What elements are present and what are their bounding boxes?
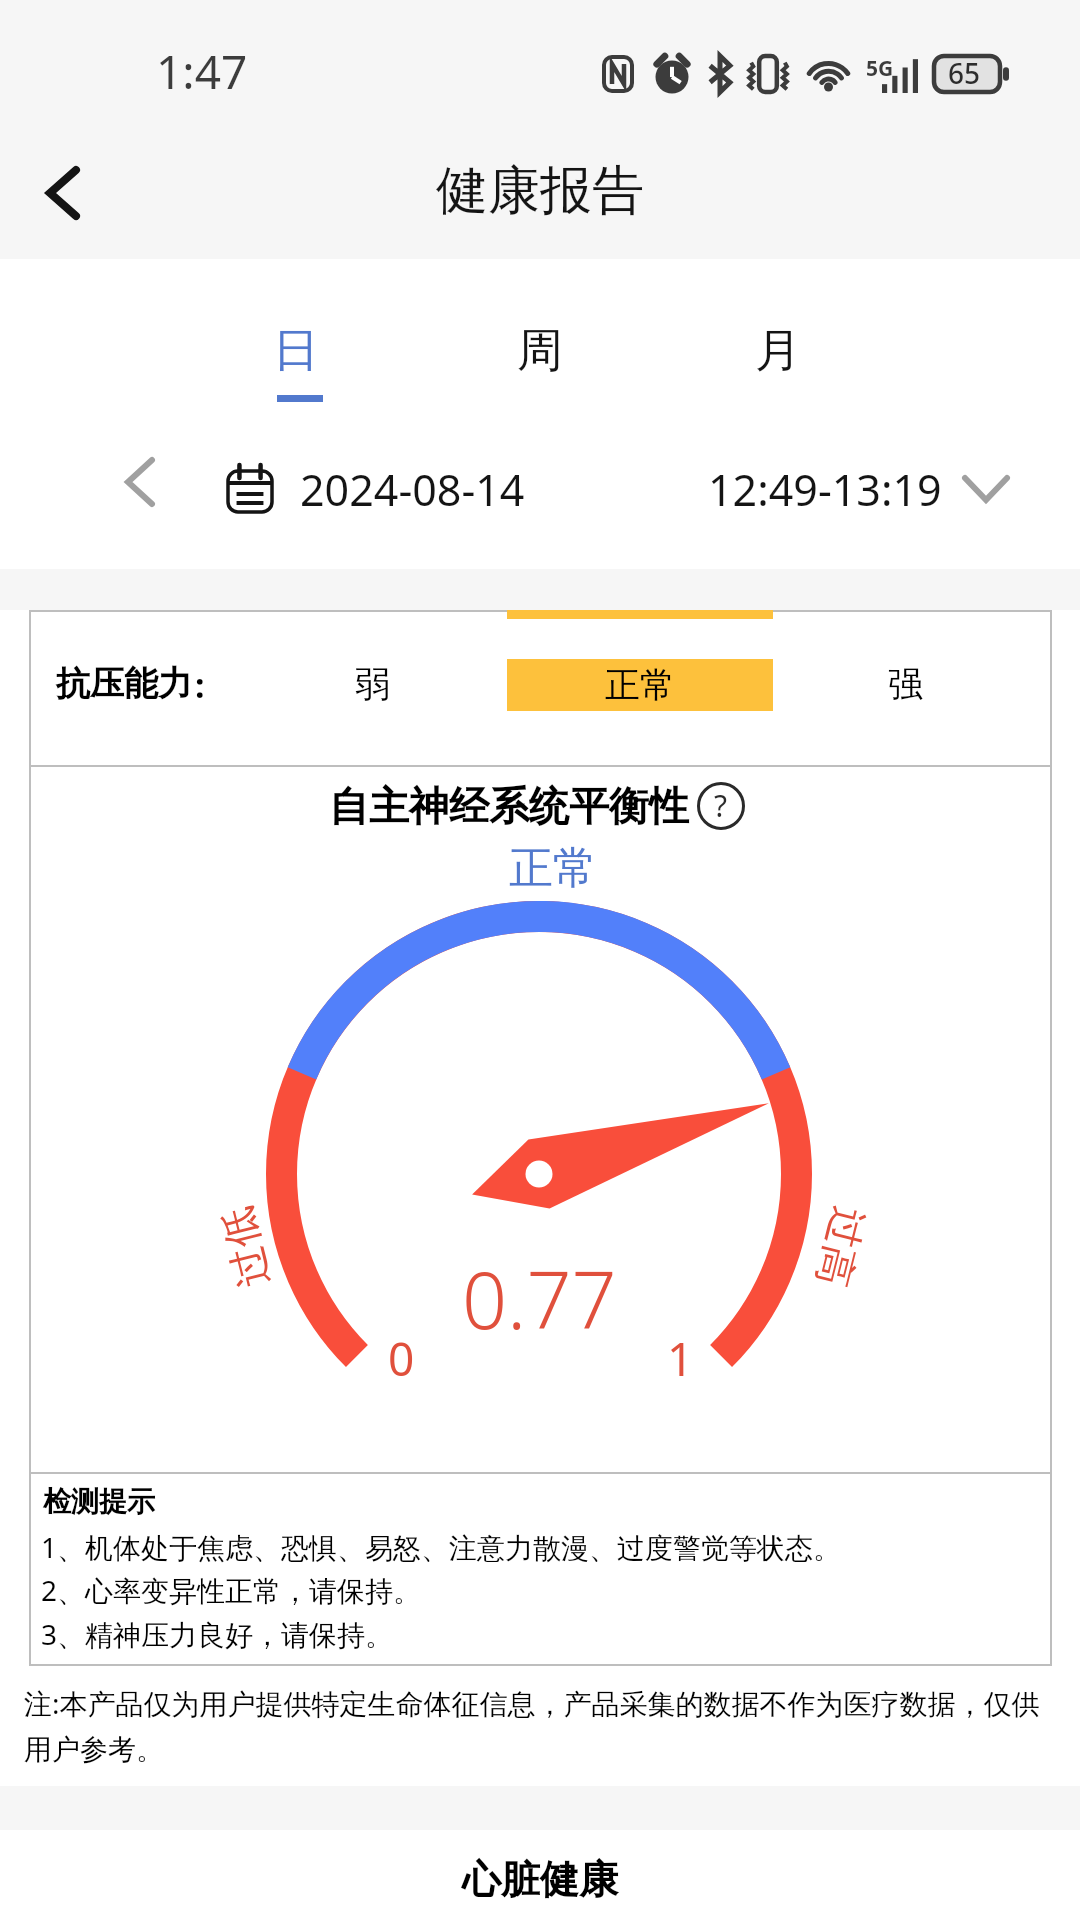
button[interactable]: Back: [19, 149, 107, 237]
staticText: 12:49-13:19: [708, 460, 942, 518]
staticText: 正常: [605, 663, 675, 707]
button[interactable]: 正常: [507, 659, 773, 711]
staticText: 0: [388, 1327, 415, 1387]
button[interactable]: 强: [860, 651, 950, 717]
button[interactable]: 弱: [327, 651, 417, 717]
staticText: 2、心率变异性正常，请保持。: [41, 1571, 422, 1609]
staticText: 强: [888, 662, 923, 706]
staticText: 月: [755, 322, 801, 380]
staticText: 65: [948, 54, 981, 92]
staticText: 2024-08-14: [300, 460, 525, 518]
staticText: 弱: [355, 662, 390, 706]
staticText: 检测提示: [43, 1484, 155, 1519]
staticText: 健康报告: [436, 158, 644, 224]
staticText: 周: [517, 322, 563, 380]
staticText: 1: [667, 1327, 694, 1387]
button[interactable]: Previous day: [104, 446, 176, 518]
staticText: 过低: [211, 1202, 279, 1292]
staticText: 注:本产品仅为用户提供特定生命体征信息，产品采集的数据不作为医疗数据，仅供 用户…: [24, 1684, 1040, 1767]
staticText: 0.77: [462, 1245, 617, 1353]
button[interactable]: 月: [722, 312, 834, 412]
button[interactable]: 周: [484, 312, 596, 412]
staticText: 1:47: [156, 40, 248, 103]
staticText: 3、精神压力良好，请保持。: [41, 1615, 394, 1653]
staticText: 1、机体处于焦虑、恐惧、易怒、注意力散漫、过度警觉等状态。: [41, 1528, 842, 1566]
staticText: ?: [714, 785, 728, 826]
staticText: 5G: [866, 54, 894, 83]
staticText: 心脏健康: [462, 1855, 618, 1904]
staticText: 过高: [807, 1202, 875, 1292]
button[interactable]: 12:49-13:19: [708, 460, 1010, 518]
button[interactable]: 心脏健康: [0, 1830, 1080, 1920]
staticText: :: [195, 662, 205, 708]
staticText: 抗压能力: [56, 662, 192, 705]
button[interactable]: Help: [697, 782, 745, 830]
staticText: 自主神经系统平衡性: [329, 781, 689, 831]
staticText: 日: [273, 322, 319, 380]
staticText: 正常: [509, 841, 597, 896]
button[interactable]: 日: [240, 312, 352, 412]
button[interactable]: 2024-08-14: [226, 460, 525, 518]
